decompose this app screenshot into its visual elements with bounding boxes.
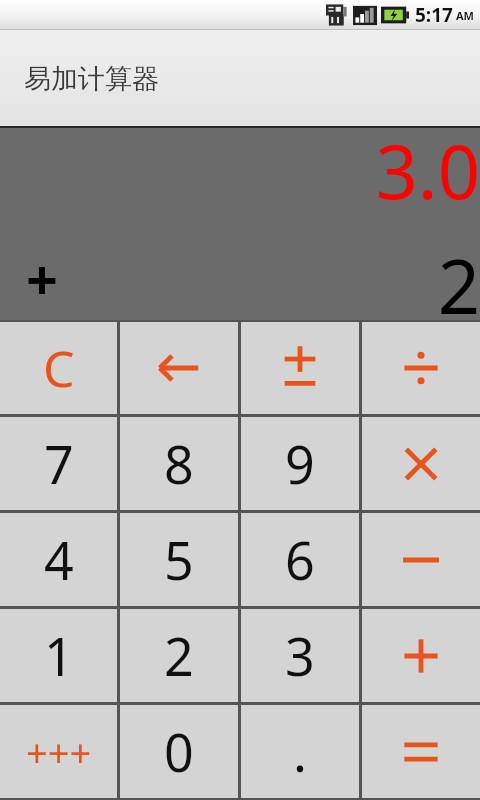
button[interactable]: Plus minus xyxy=(241,322,359,414)
button[interactable]: Divide xyxy=(362,322,480,414)
button[interactable]: Multiply xyxy=(362,417,480,510)
button[interactable]: 5 xyxy=(120,513,238,606)
staticText: 6 xyxy=(285,524,315,595)
button[interactable]: Equals xyxy=(362,705,480,798)
staticText: 3 xyxy=(285,620,315,691)
staticText: AM xyxy=(456,8,474,23)
staticText: 5:17 xyxy=(415,2,453,28)
staticText: . xyxy=(293,716,307,787)
staticText: 2 xyxy=(437,235,480,320)
staticText: C xyxy=(43,334,75,402)
button[interactable]: Backspace xyxy=(120,322,238,414)
button[interactable]: 6 xyxy=(241,513,359,606)
staticText: + xyxy=(26,240,59,316)
staticText: 0 xyxy=(164,716,194,787)
staticText: 4 xyxy=(44,524,74,595)
button[interactable]: 4 xyxy=(0,513,117,606)
button[interactable]: 0 xyxy=(120,705,238,798)
button[interactable]: 2 xyxy=(120,609,238,702)
staticText: 1 xyxy=(44,620,74,691)
button[interactable]: C xyxy=(0,322,117,414)
button[interactable]: 9 xyxy=(241,417,359,510)
button[interactable]: 3 xyxy=(241,609,359,702)
staticText: 9 xyxy=(285,428,315,499)
staticText: +++ xyxy=(26,726,92,778)
staticText: 3.0 xyxy=(375,128,480,221)
staticText: 2 xyxy=(164,620,194,691)
button[interactable]: 7 xyxy=(0,417,117,510)
button[interactable]: 8 xyxy=(120,417,238,510)
button[interactable]: 1 xyxy=(0,609,117,702)
button[interactable]: Subtract xyxy=(362,513,480,606)
staticText: 易加计算器 xyxy=(24,62,159,96)
staticText: 5 xyxy=(164,524,194,595)
button[interactable]: . xyxy=(241,705,359,798)
button[interactable]: +++ xyxy=(0,705,117,798)
staticText: 7 xyxy=(44,428,74,499)
staticText: 8 xyxy=(164,428,194,499)
button[interactable]: Add xyxy=(362,609,480,702)
